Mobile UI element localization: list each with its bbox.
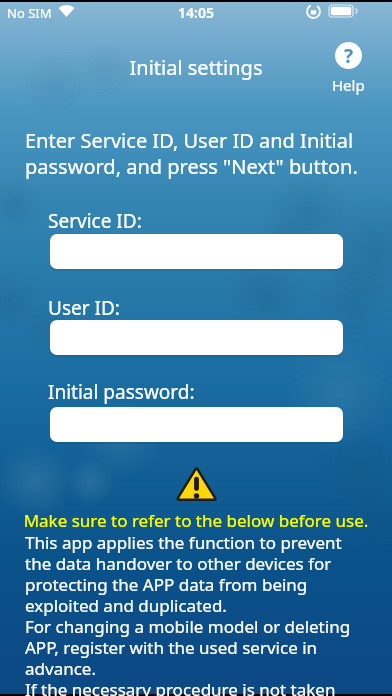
- staticText: Help: [332, 75, 365, 95]
- button[interactable]: [50, 234, 343, 269]
- staticText: Service ID:: [48, 208, 142, 234]
- staticText: Initial settings: [0, 54, 392, 81]
- staticText: Initial password:: [48, 379, 195, 405]
- button[interactable]: ?: [324, 42, 372, 95]
- staticText: 14:05: [0, 3, 392, 22]
- staticText: Enter Service ID, User ID and Initial pa…: [25, 127, 358, 179]
- button[interactable]: [50, 407, 343, 442]
- staticText: ?: [344, 43, 354, 69]
- staticText: This app applies the function to prevent…: [25, 531, 351, 696]
- staticText: User ID:: [48, 295, 120, 321]
- staticText: No SIM: [7, 4, 52, 22]
- staticText: Make sure to refer to the below before u…: [0, 509, 392, 532]
- button[interactable]: [50, 320, 343, 355]
